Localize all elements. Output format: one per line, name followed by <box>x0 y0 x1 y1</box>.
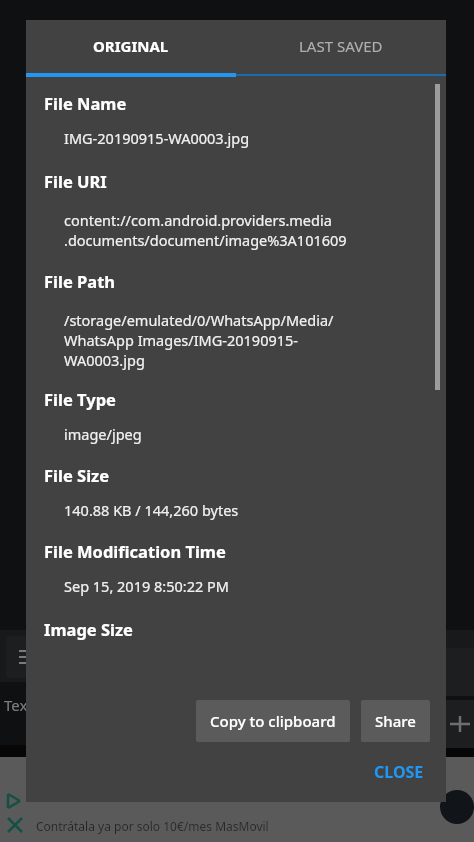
staticText: Share <box>375 711 416 731</box>
staticText: Copy to clipboard <box>210 711 336 731</box>
staticText: Contrátala ya por solo 10€/mes MasMovil <box>36 818 269 834</box>
staticText: File Name <box>44 92 127 114</box>
button[interactable]: CLOSE <box>360 751 438 793</box>
staticText: IMG-20190915-WA0003.jpg <box>64 128 250 148</box>
staticText: File Modification Time <box>44 540 226 562</box>
staticText: /storage/emulated/0/WhatsApp/Media/ What… <box>64 310 334 370</box>
staticText: ORIGINAL <box>93 36 169 56</box>
button[interactable]: Copy to clipboard <box>196 700 350 742</box>
staticText: content://com.android.providers.media .d… <box>64 210 347 250</box>
staticText: image/jpeg <box>64 424 142 444</box>
staticText: LAST SAVED <box>299 36 383 56</box>
staticText: Sep 15, 2019 8:50:22 PM <box>64 576 229 596</box>
staticText: CLOSE <box>374 761 424 783</box>
staticText: File Path <box>44 270 116 292</box>
staticText: 140.88 KB / 144,260 bytes <box>64 500 239 520</box>
button[interactable]: LAST SAVED <box>236 20 446 72</box>
staticText: File URI <box>44 170 107 192</box>
button[interactable]: ORIGINAL <box>26 20 236 72</box>
staticText: File Size <box>44 464 110 486</box>
button[interactable]: Share <box>361 700 430 742</box>
staticText: Image Size <box>44 618 133 640</box>
staticText: Tex <box>4 695 28 715</box>
staticText: File Type <box>44 388 116 410</box>
